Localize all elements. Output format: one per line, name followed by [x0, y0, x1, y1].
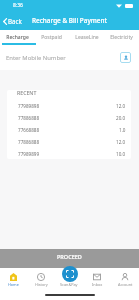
staticText: 77886888	[18, 139, 40, 145]
staticText: PROCEED	[57, 253, 82, 260]
staticText: 8:36	[13, 2, 23, 9]
button[interactable]: LeaseLine	[69, 30, 104, 44]
button[interactable]: 77886888	[7, 136, 131, 148]
button[interactable]: 77886888	[7, 112, 131, 124]
button[interactable]: Inbox	[83, 268, 111, 300]
staticText: Scan&Pay	[60, 282, 78, 287]
button[interactable]: 77668888	[7, 124, 131, 136]
staticText: Electricity	[110, 34, 133, 41]
button[interactable]: Postpaid	[34, 30, 69, 44]
staticText: Account	[118, 282, 133, 287]
staticText: Back	[8, 17, 22, 25]
staticText: Home	[8, 282, 19, 287]
staticText: 12.0	[116, 139, 126, 145]
staticText: 1.0	[119, 127, 126, 133]
staticText: LeaseLine	[75, 34, 99, 41]
staticText: 77668888	[18, 127, 40, 133]
staticText: Recharge	[6, 34, 29, 41]
button[interactable]: Electricity	[104, 30, 139, 44]
button[interactable]: 77989898	[7, 100, 131, 112]
staticText: 20.0	[116, 115, 126, 121]
button[interactable]: History	[27, 268, 55, 300]
button[interactable]: Recharge	[0, 30, 34, 44]
staticText: RECENT	[17, 90, 37, 96]
button[interactable]: Scan and Pay	[62, 266, 78, 282]
staticText: 77989899	[18, 151, 40, 157]
staticText: History	[35, 282, 48, 287]
button[interactable]: 77989899	[7, 148, 131, 159]
staticText: 77886888	[18, 115, 40, 121]
button[interactable]: PROCEED	[0, 249, 139, 268]
staticText: Enter Mobile Number	[6, 54, 66, 62]
staticText: Inbox	[92, 282, 103, 287]
button[interactable]: Account	[111, 268, 139, 300]
button[interactable]: Scan&Pay	[55, 268, 83, 300]
button[interactable]: Pick contact	[120, 52, 131, 63]
staticText: 77989898	[18, 103, 40, 109]
staticText: 12.0	[116, 103, 126, 109]
staticText: 10.0	[116, 151, 126, 157]
staticText: Recharge & Bill Payment	[32, 16, 107, 25]
staticText: Postpaid	[41, 34, 62, 41]
button[interactable]: Back	[0, 14, 27, 28]
button[interactable]: Home	[0, 268, 27, 300]
